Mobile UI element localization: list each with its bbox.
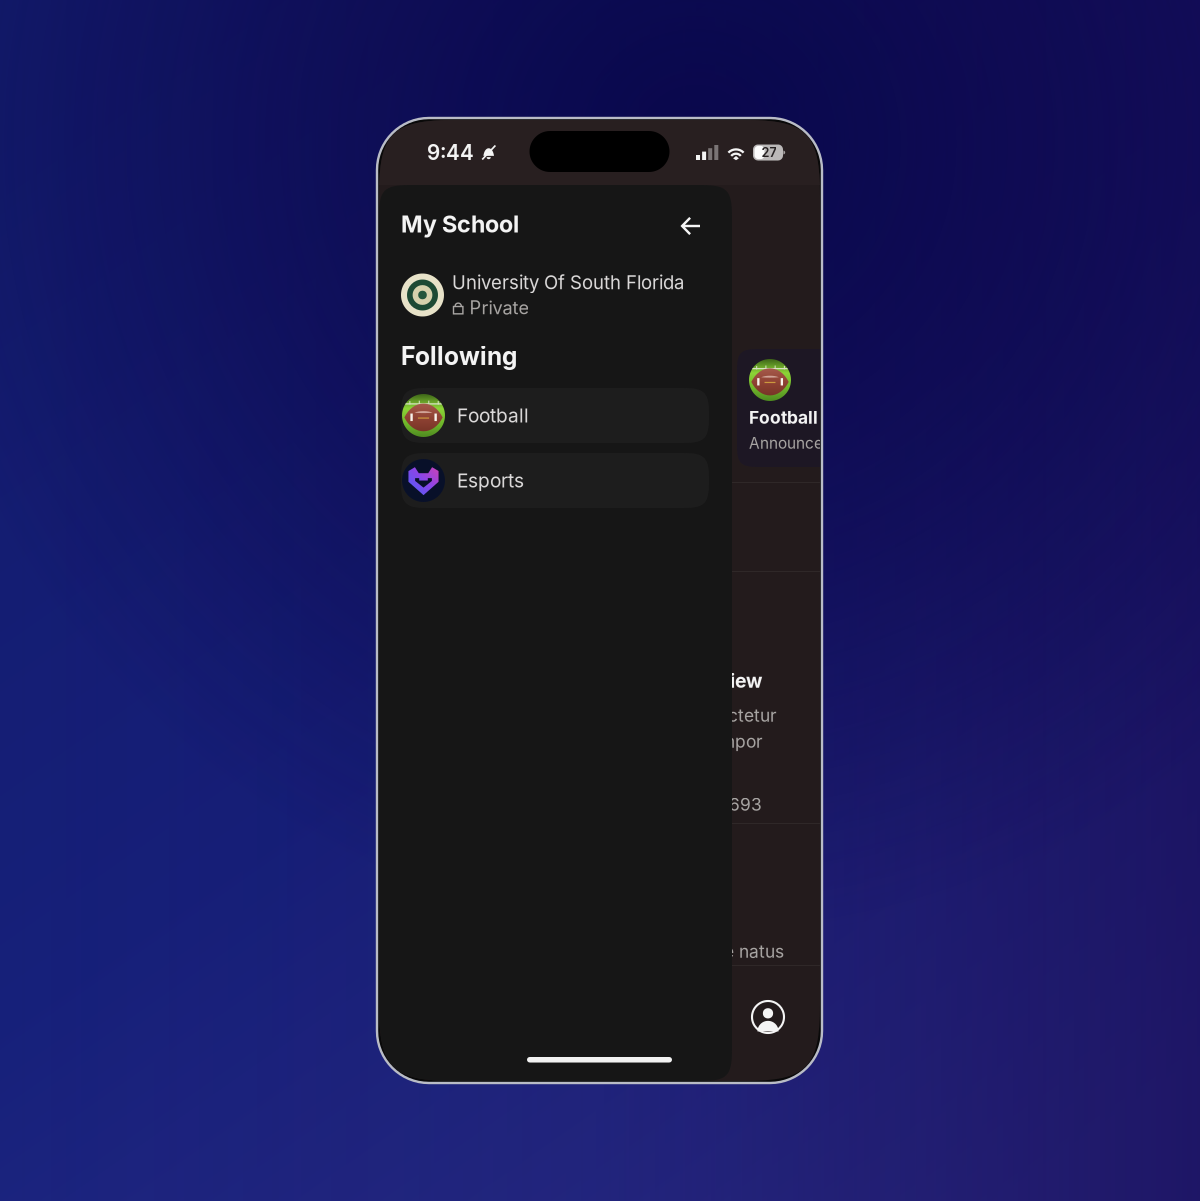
button[interactable]: Profile <box>746 995 790 1039</box>
staticText: Private <box>469 297 529 319</box>
staticText: 27 <box>761 145 776 160</box>
staticText: Lorem ipsum dolor sit amet, consectetur <box>447 705 777 726</box>
staticText: Esports <box>457 469 524 492</box>
staticText: My School <box>401 210 519 238</box>
button[interactable]: University Of South Florida <box>401 270 732 320</box>
staticText: Football <box>457 404 529 427</box>
staticText: Overview <box>673 669 762 692</box>
button[interactable]: Back <box>676 211 706 241</box>
staticText: Sed ut perspiciatis unde omnis iste natu… <box>448 941 784 962</box>
staticText: Founded 1693 <box>645 794 762 815</box>
button[interactable]: Football <box>401 388 709 443</box>
staticText: Following <box>401 341 517 371</box>
staticText: Announcements <box>749 434 867 453</box>
staticText: University Of South Florida <box>452 271 684 294</box>
button[interactable]: Esports <box>401 453 709 508</box>
staticText: 9:44 <box>427 140 474 165</box>
staticText: Football <box>749 407 818 428</box>
staticText: adipiscing elit, sed do eiusmod tempor <box>446 731 763 752</box>
